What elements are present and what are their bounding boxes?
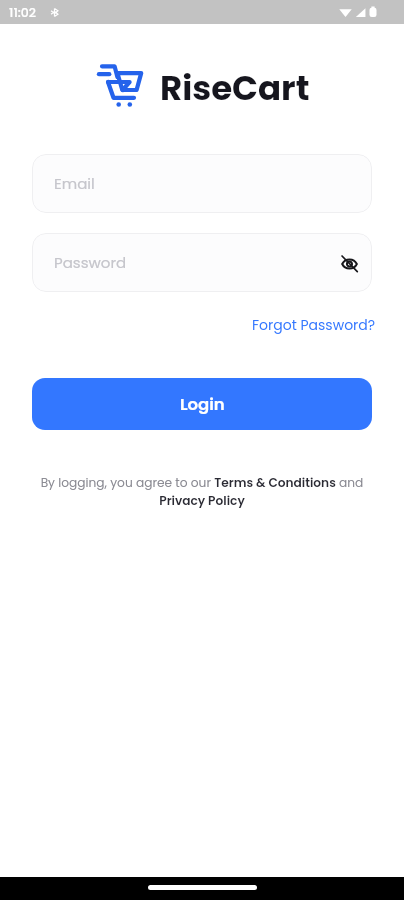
staticText: Password xyxy=(54,252,127,273)
staticText: Forgot Password? xyxy=(252,315,376,335)
button[interactable]: Email xyxy=(32,154,372,213)
button[interactable]: Forgot Password? xyxy=(252,315,376,335)
button[interactable]: Show password xyxy=(333,247,365,279)
staticText: 11:02 xyxy=(9,4,37,21)
button[interactable]: Login xyxy=(32,378,372,430)
staticText: RiseCart xyxy=(160,64,310,112)
staticText: By logging, you agree to our Terms & Con… xyxy=(30,474,374,509)
staticText: Login xyxy=(180,393,225,416)
staticText: Email xyxy=(54,173,95,194)
button[interactable]: Password xyxy=(32,233,372,292)
